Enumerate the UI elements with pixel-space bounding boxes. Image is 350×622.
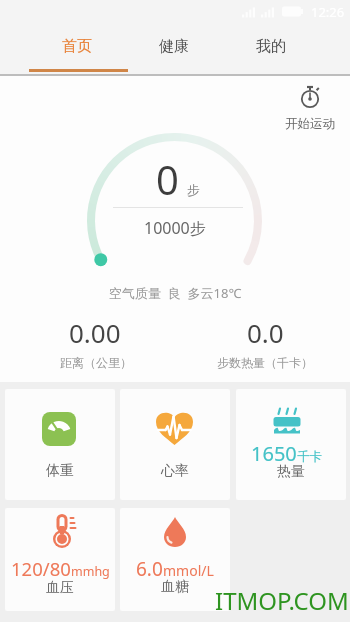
staticText: 120/80 <box>11 556 71 581</box>
staticText: 距离（公里） <box>60 355 132 370</box>
staticText: 千卡 <box>297 449 322 465</box>
staticText: 血压 <box>46 579 74 597</box>
staticText: 首页 <box>62 37 92 56</box>
staticText: 0.0 <box>247 315 284 350</box>
button[interactable] <box>120 508 230 611</box>
button[interactable] <box>236 389 346 500</box>
staticText: 6.0 <box>136 556 163 582</box>
staticText: 健康 <box>159 37 189 56</box>
button[interactable]: 我的 <box>222 24 319 69</box>
staticText: 0.00 <box>69 315 121 350</box>
staticText: 1650 <box>251 440 297 467</box>
button[interactable]: 首页 <box>28 24 125 69</box>
staticText: mmol/L <box>163 561 214 580</box>
staticText: 空气质量 良 多云18℃ <box>109 284 242 302</box>
staticText: 步数热量（千卡） <box>217 355 313 370</box>
button[interactable]: 开始运动 <box>282 84 338 132</box>
staticText: 10000步 <box>144 217 206 239</box>
staticText: 我的 <box>256 37 286 56</box>
staticText: 心率 <box>161 462 189 480</box>
button[interactable] <box>5 389 115 500</box>
staticText: 血糖 <box>161 578 189 596</box>
staticText: ITMOP.COM <box>215 584 349 617</box>
button[interactable]: 健康 <box>125 24 222 69</box>
button[interactable] <box>120 389 230 500</box>
staticText: 开始运动 <box>285 116 335 132</box>
staticText: 0 <box>156 152 179 206</box>
staticText: mmhg <box>71 563 110 580</box>
staticText: 体重 <box>46 462 74 480</box>
staticText: 热量 <box>277 463 305 481</box>
staticText: 步 <box>187 182 200 198</box>
button[interactable] <box>5 508 115 611</box>
staticText: 12:26 <box>311 3 345 21</box>
